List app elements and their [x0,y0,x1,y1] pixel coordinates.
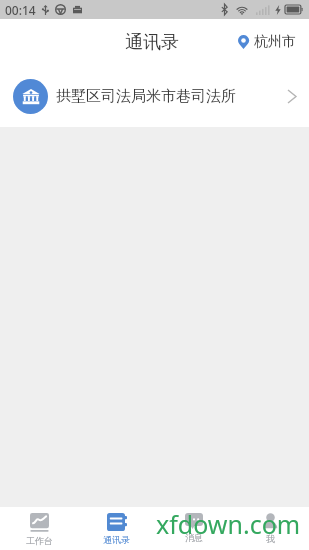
staticText: 消息 [185,532,203,543]
staticText: 我 [266,533,275,544]
button[interactable]: 消息 [155,507,232,550]
button[interactable]: 拱墅区司法局米市巷司法所 [0,65,309,127]
button[interactable]: 工作台 [0,507,78,550]
staticText: 拱墅区司法局米市巷司法所 [56,87,236,106]
staticText: 00:14 [5,2,36,18]
button[interactable]: Location [238,33,296,51]
staticText: 通讯录 [103,534,130,545]
staticText: 通讯录 [125,31,179,54]
button[interactable]: 我 [232,507,309,550]
staticText: 杭州市 [254,33,296,51]
staticText: xfdown.com [156,507,301,541]
staticText: 工作台 [26,535,53,546]
button[interactable]: 通讯录 [78,507,155,550]
